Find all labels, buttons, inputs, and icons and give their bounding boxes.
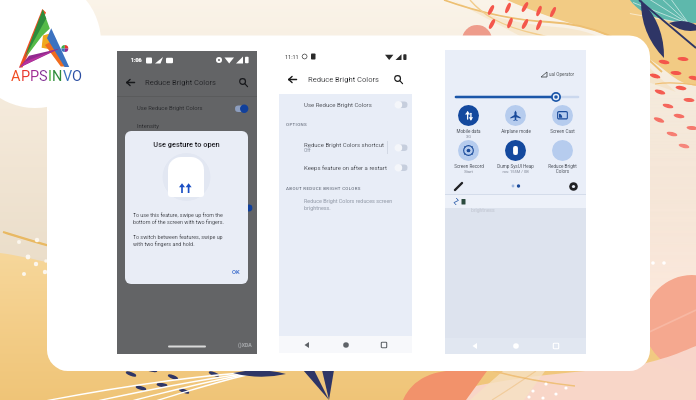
- staticText: brightness: [471, 207, 495, 213]
- staticText: Use Reduce Bright Colors: [137, 105, 203, 112]
- staticText: N: [52, 68, 63, 85]
- staticText: Reduce Bright Colors: [145, 78, 216, 87]
- staticText: ()XDA: [238, 342, 252, 348]
- button[interactable]: Screen Record: [445, 140, 492, 174]
- button[interactable]: Recents: [373, 336, 395, 353]
- staticText: S: [39, 68, 48, 85]
- button[interactable]: Reduce Bright Colors: [539, 140, 586, 175]
- staticText: OPTIONS: [286, 122, 307, 127]
- staticText: Screen Cast: [550, 129, 575, 134]
- staticText: OK: [232, 269, 240, 276]
- button[interactable]: Back: [296, 336, 318, 353]
- staticText: Reduce Bright Colors reduces screen brig…: [304, 198, 393, 211]
- button[interactable]: Use Reduce Bright Colors: [117, 100, 257, 116]
- staticText: Use Reduce Bright Colors: [304, 101, 372, 108]
- button[interactable]: Dump SysUI Heap: [492, 140, 539, 174]
- button[interactable]: Airplane mode: [492, 105, 539, 134]
- staticText: Reduce Bright Colors: [548, 164, 577, 175]
- button[interactable]: Edit: [451, 179, 465, 193]
- button[interactable]: Home: [505, 338, 527, 354]
- staticText: Dump SysUI Heap: [497, 164, 534, 169]
- button[interactable]: Search: [391, 72, 406, 87]
- staticText: Use gesture to open: [125, 140, 248, 149]
- button[interactable]: Search: [236, 75, 251, 90]
- staticText: ual Operator: [549, 72, 575, 77]
- button[interactable]: Back: [285, 72, 300, 87]
- button[interactable]: Settings: [566, 179, 580, 193]
- staticText: ros: 155M / 0B: [502, 169, 529, 174]
- button[interactable]: OK: [232, 269, 240, 276]
- staticText: Start: [464, 169, 473, 174]
- button[interactable]: Use Reduce Bright Colors: [279, 97, 412, 111]
- staticText: A: [11, 68, 21, 85]
- staticText: To switch between features, swipe up wit…: [133, 234, 223, 247]
- staticText: Intensity: [137, 123, 159, 130]
- staticText: P: [30, 68, 39, 85]
- staticText: Keeps feature on after a restart: [304, 164, 388, 171]
- button[interactable]: Screen Cast: [539, 105, 586, 134]
- staticText: Reduce Bright Colors shortcut: [304, 141, 384, 148]
- button[interactable]: Back: [464, 338, 486, 354]
- button[interactable]: Back: [123, 75, 138, 90]
- staticText: 11:11: [285, 54, 299, 60]
- staticText: V: [63, 68, 72, 85]
- staticText: 3G: [466, 134, 471, 139]
- button[interactable]: Reduce Bright Colors shortcut: [279, 137, 412, 157]
- staticText: 1:06: [131, 57, 142, 63]
- button[interactable]: Keeps feature on after a restart: [279, 160, 412, 174]
- staticText: Screen Record: [454, 164, 484, 169]
- staticText: Reduce Bright Colors: [308, 75, 379, 84]
- staticText: Airplane mode: [501, 129, 531, 134]
- staticText: To use this feature, swipe up from the b…: [133, 212, 224, 225]
- staticText: Off: [304, 148, 311, 154]
- staticText: I: [48, 68, 52, 85]
- staticText: P: [21, 68, 30, 85]
- button[interactable]: Mobile data: [445, 105, 492, 139]
- staticText: ABOUT REDUCE BRIGHT COLORS: [286, 186, 361, 191]
- staticText: O: [72, 68, 82, 85]
- button[interactable]: Recents: [545, 338, 567, 354]
- button[interactable]: Home: [335, 336, 357, 353]
- staticText: Mobile data: [456, 129, 481, 134]
